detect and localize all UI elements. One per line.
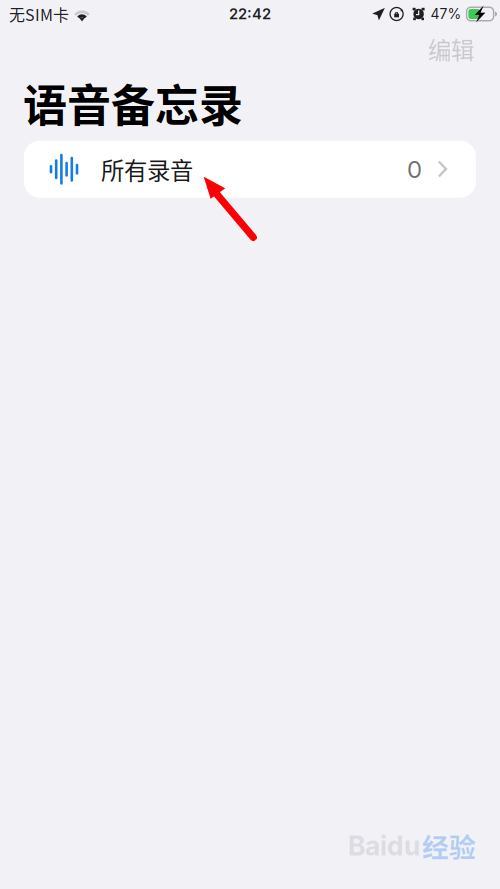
staticText: 所有录音 — [101, 152, 193, 186]
staticText: 47% — [431, 5, 462, 22]
staticText: 语音备忘录 — [23, 71, 243, 135]
button[interactable]: 编辑 — [416, 24, 486, 68]
staticText: 22:42 — [229, 5, 271, 23]
button[interactable]: 所有录音 — [24, 141, 476, 198]
staticText: 编辑 — [428, 32, 474, 66]
staticText: 0 — [407, 155, 422, 184]
staticText: Baidu — [348, 830, 420, 862]
staticText: 无SIM卡 — [9, 2, 69, 26]
staticText: 经验 — [422, 826, 476, 865]
